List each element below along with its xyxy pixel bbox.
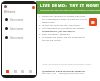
staticText: Welcome bbox=[4, 10, 16, 14]
staticText: Item name bbox=[10, 18, 24, 22]
staticText: Download the app and sign in with the de… bbox=[40, 9, 100, 12]
staticText: identity app. bbox=[42, 21, 55, 24]
staticText: for "Acquirement" when you want to try o… bbox=[42, 18, 87, 21]
staticText: automatically. Just tap Sign In. bbox=[42, 30, 76, 33]
staticText: 2. Launch the App then tap "Live Demo" bbox=[39, 24, 81, 27]
staticText: Questions? Need Technical Support? bbox=[42, 69, 86, 72]
staticText: 1. Search the App Store or Google Play S… bbox=[39, 15, 85, 18]
button[interactable]: LIVE DEMO: TRY IT NOW! bbox=[36, 1, 100, 14]
staticText: the top left corner. bbox=[42, 39, 61, 42]
button[interactable]: Notifications bbox=[32, 6, 35, 9]
staticText: 800-555-1234 · sales@acquirement.com bbox=[42, 72, 84, 75]
button[interactable]: Item name bbox=[2, 15, 36, 24]
button[interactable]: Tab 1 bbox=[6, 70, 9, 73]
staticText: 5. To display the menu, tap the three li… bbox=[39, 36, 85, 39]
staticText: Item name bbox=[10, 36, 24, 40]
staticText: Item name bbox=[10, 27, 24, 31]
button[interactable]: Item name bbox=[2, 24, 36, 33]
staticText: Note: the demo account data resets every… bbox=[42, 63, 92, 66]
staticText: e bbox=[91, 18, 95, 26]
staticText: 3. The Username and Password are entered bbox=[39, 27, 85, 30]
staticText: 4. Enter Password: password bbox=[39, 33, 70, 36]
button[interactable]: App icon bbox=[89, 18, 97, 26]
button[interactable]: Item name bbox=[2, 33, 36, 42]
staticText: LIVE DEMO: TRY IT NOW! bbox=[40, 3, 99, 8]
